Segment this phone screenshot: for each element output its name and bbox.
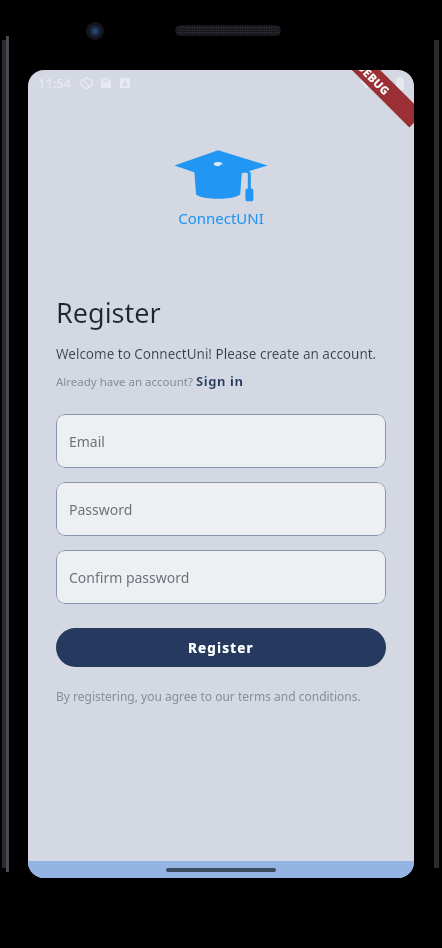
staticText: Welcome to ConnectUni! Please create an … <box>56 345 377 363</box>
staticText: Email <box>69 432 105 451</box>
other: Debug banner <box>324 70 414 127</box>
staticText: Already have an account? <box>56 374 196 390</box>
staticText: 11:54 <box>38 74 72 92</box>
staticText: DEBUG <box>354 70 394 98</box>
staticText: Sign in <box>196 372 244 390</box>
button[interactable]: Email <box>56 414 386 468</box>
button[interactable]: Register <box>56 628 386 667</box>
staticText: Register <box>56 294 161 331</box>
staticText: By registering, you agree to our terms a… <box>56 688 361 704</box>
staticText: Password <box>69 500 133 519</box>
staticText: Register <box>188 639 254 657</box>
staticText: Confirm password <box>69 568 190 587</box>
staticText: ConnectUNI <box>178 208 264 228</box>
other: Home gesture handle <box>166 868 276 872</box>
button[interactable]: Sign in <box>196 372 244 390</box>
button[interactable]: Password <box>56 482 386 536</box>
button[interactable]: Confirm password <box>56 550 386 604</box>
